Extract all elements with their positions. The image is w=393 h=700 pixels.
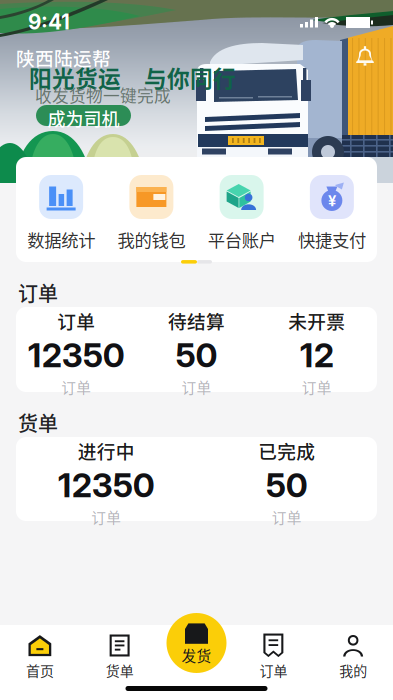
staticText: 货单	[18, 408, 58, 428]
staticText: 50	[175, 335, 217, 375]
button[interactable]: 通知	[355, 46, 375, 66]
staticText: 订单	[57, 307, 95, 334]
button[interactable]: 发货	[166, 613, 226, 673]
staticText: ¥	[328, 192, 336, 210]
button[interactable]: 平台账户	[196, 175, 287, 252]
staticText: 快捷支付	[298, 227, 366, 252]
staticText: 订单	[259, 660, 287, 680]
staticText: 12350	[28, 335, 125, 375]
staticText: 订单	[272, 506, 302, 528]
staticText: 数据统计	[27, 227, 95, 252]
staticText: 未开票	[288, 307, 345, 334]
staticText: 我的钱包	[117, 227, 185, 252]
staticText: 9:41	[28, 9, 70, 34]
staticText: 收发货物一键完成	[35, 83, 171, 98]
staticText: 陕西陆运帮	[16, 44, 111, 60]
button[interactable]: ¥	[287, 175, 377, 252]
staticText: 12	[300, 335, 334, 375]
staticText: 订单	[61, 376, 91, 398]
staticText: 进行中	[78, 437, 135, 464]
staticText: 已完成	[258, 437, 315, 464]
staticText: 发货	[181, 644, 211, 666]
staticText: 订单	[181, 376, 211, 398]
staticText: 货单	[106, 660, 134, 680]
button[interactable]: 货单	[80, 625, 160, 700]
staticText: 订单	[91, 506, 121, 528]
staticText: 成为司机	[47, 105, 119, 126]
staticText: 12350	[58, 465, 155, 505]
staticText: 订单	[18, 278, 58, 298]
staticText: 待结算	[168, 307, 225, 334]
staticText: 我的	[339, 660, 367, 680]
staticText: 平台账户	[208, 227, 276, 252]
staticText: 订单	[302, 376, 332, 398]
button[interactable]: 我的	[313, 625, 393, 700]
staticText: 首页	[26, 660, 54, 680]
staticText: 50	[266, 465, 308, 505]
button[interactable]: 订单	[233, 625, 313, 700]
staticText: 阳光货运 与你同行	[29, 61, 236, 81]
button[interactable]: 首页	[0, 625, 80, 700]
button[interactable]: 数据统计	[16, 175, 106, 252]
button[interactable]: 成为司机	[36, 105, 131, 126]
button[interactable]: 我的钱包	[106, 175, 196, 252]
